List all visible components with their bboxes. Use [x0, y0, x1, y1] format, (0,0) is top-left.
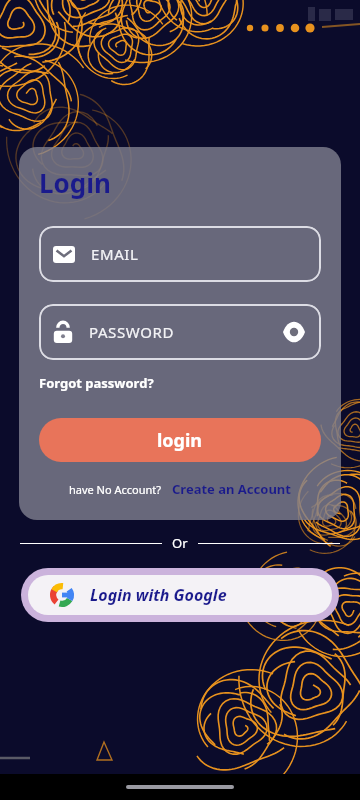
button[interactable]: login [39, 418, 321, 462]
staticText: Or [172, 534, 188, 552]
staticText: have No Account? [69, 482, 162, 497]
button[interactable]: PASSWORD [39, 304, 321, 360]
staticText: PASSWORD [89, 322, 174, 342]
button[interactable]: Show password [281, 319, 307, 345]
staticText: login [157, 428, 203, 453]
staticText: Login [39, 165, 111, 200]
staticText: Login with Google [90, 584, 227, 606]
button[interactable]: EMAIL [39, 226, 321, 282]
button[interactable]: Forgot password? [39, 374, 154, 392]
button[interactable]: Login with Google [21, 568, 339, 622]
button[interactable]: Create an Account [172, 480, 291, 498]
staticText: Forgot password? [39, 374, 154, 392]
staticText: Create an Account [172, 480, 291, 498]
staticText: EMAIL [91, 244, 139, 264]
